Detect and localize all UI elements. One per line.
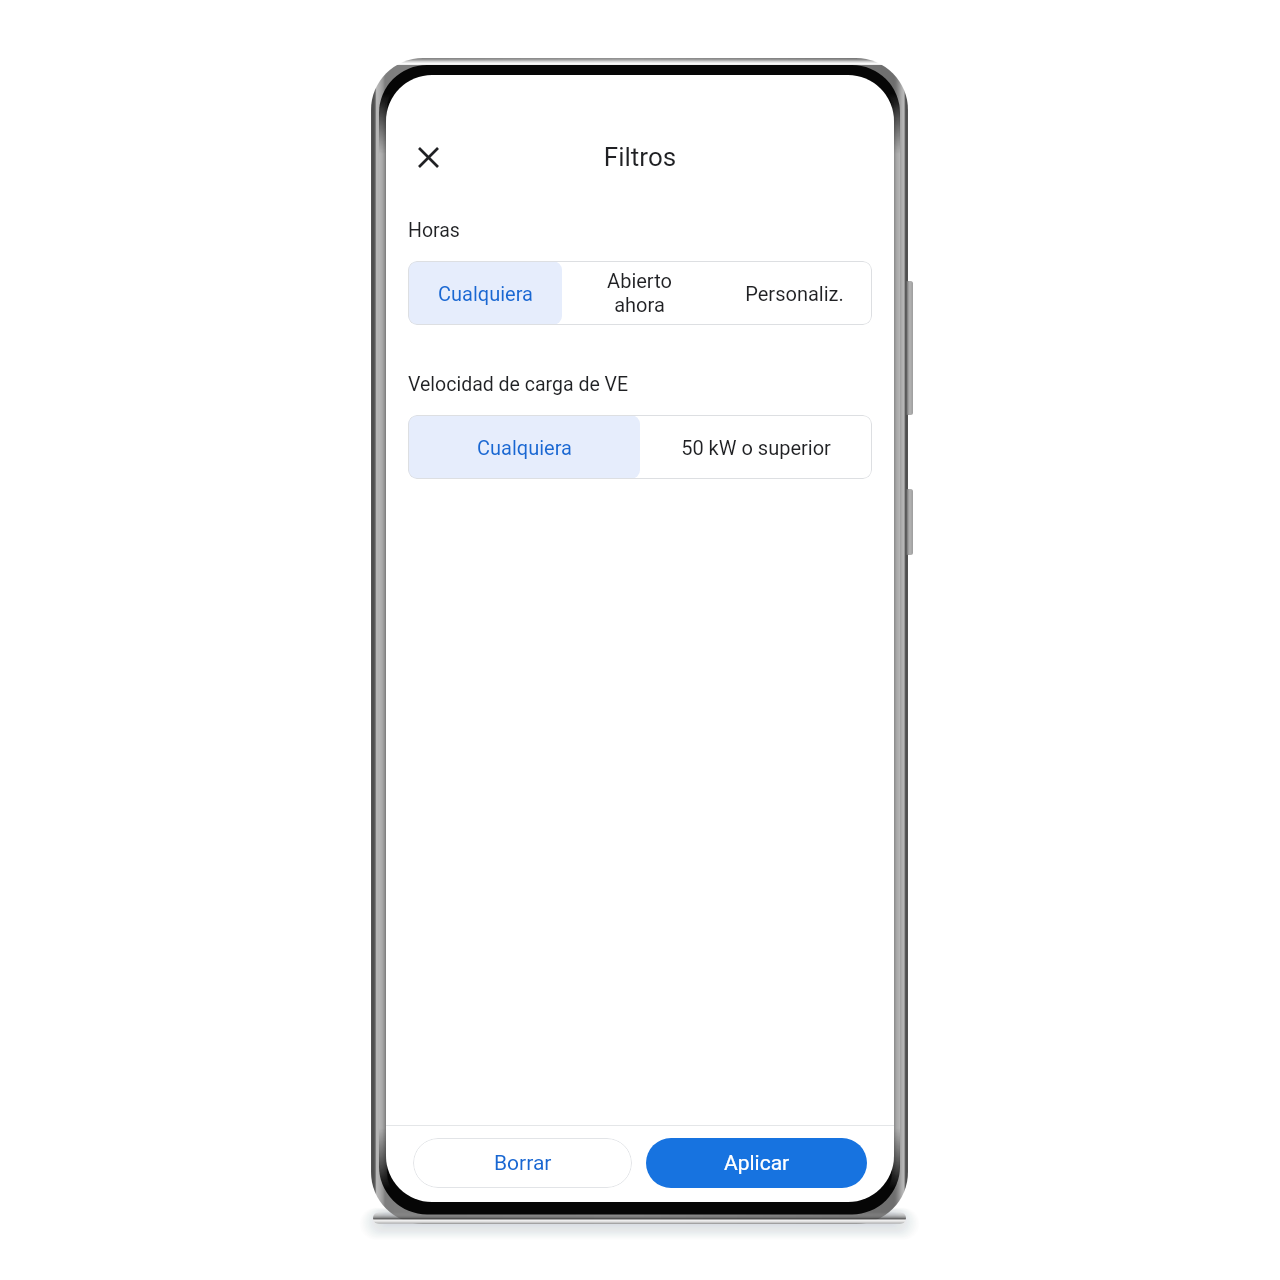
button[interactable]: Borrar xyxy=(413,1138,632,1188)
button[interactable]: Abierto ahora xyxy=(562,261,717,325)
staticText: Filtros xyxy=(386,142,894,172)
staticText: 50 kW o superior xyxy=(681,436,831,459)
staticText: Borrar xyxy=(494,1151,552,1176)
staticText: Horas xyxy=(408,219,460,242)
button[interactable]: Cualquiera xyxy=(408,415,640,479)
button[interactable]: 50 kW o superior xyxy=(640,415,872,479)
button[interactable]: Personaliz. xyxy=(717,261,872,325)
staticText: Velocidad de carga de VE xyxy=(408,373,629,396)
staticText: Personaliz. xyxy=(745,282,844,305)
button[interactable]: Cualquiera xyxy=(408,261,562,325)
staticText: Aplicar xyxy=(724,1151,790,1176)
staticText: Cualquiera xyxy=(438,282,533,305)
button[interactable]: Cerrar xyxy=(404,133,452,181)
staticText: Cualquiera xyxy=(477,436,572,459)
button[interactable]: Aplicar xyxy=(646,1138,867,1188)
staticText: Abierto ahora xyxy=(607,269,672,317)
